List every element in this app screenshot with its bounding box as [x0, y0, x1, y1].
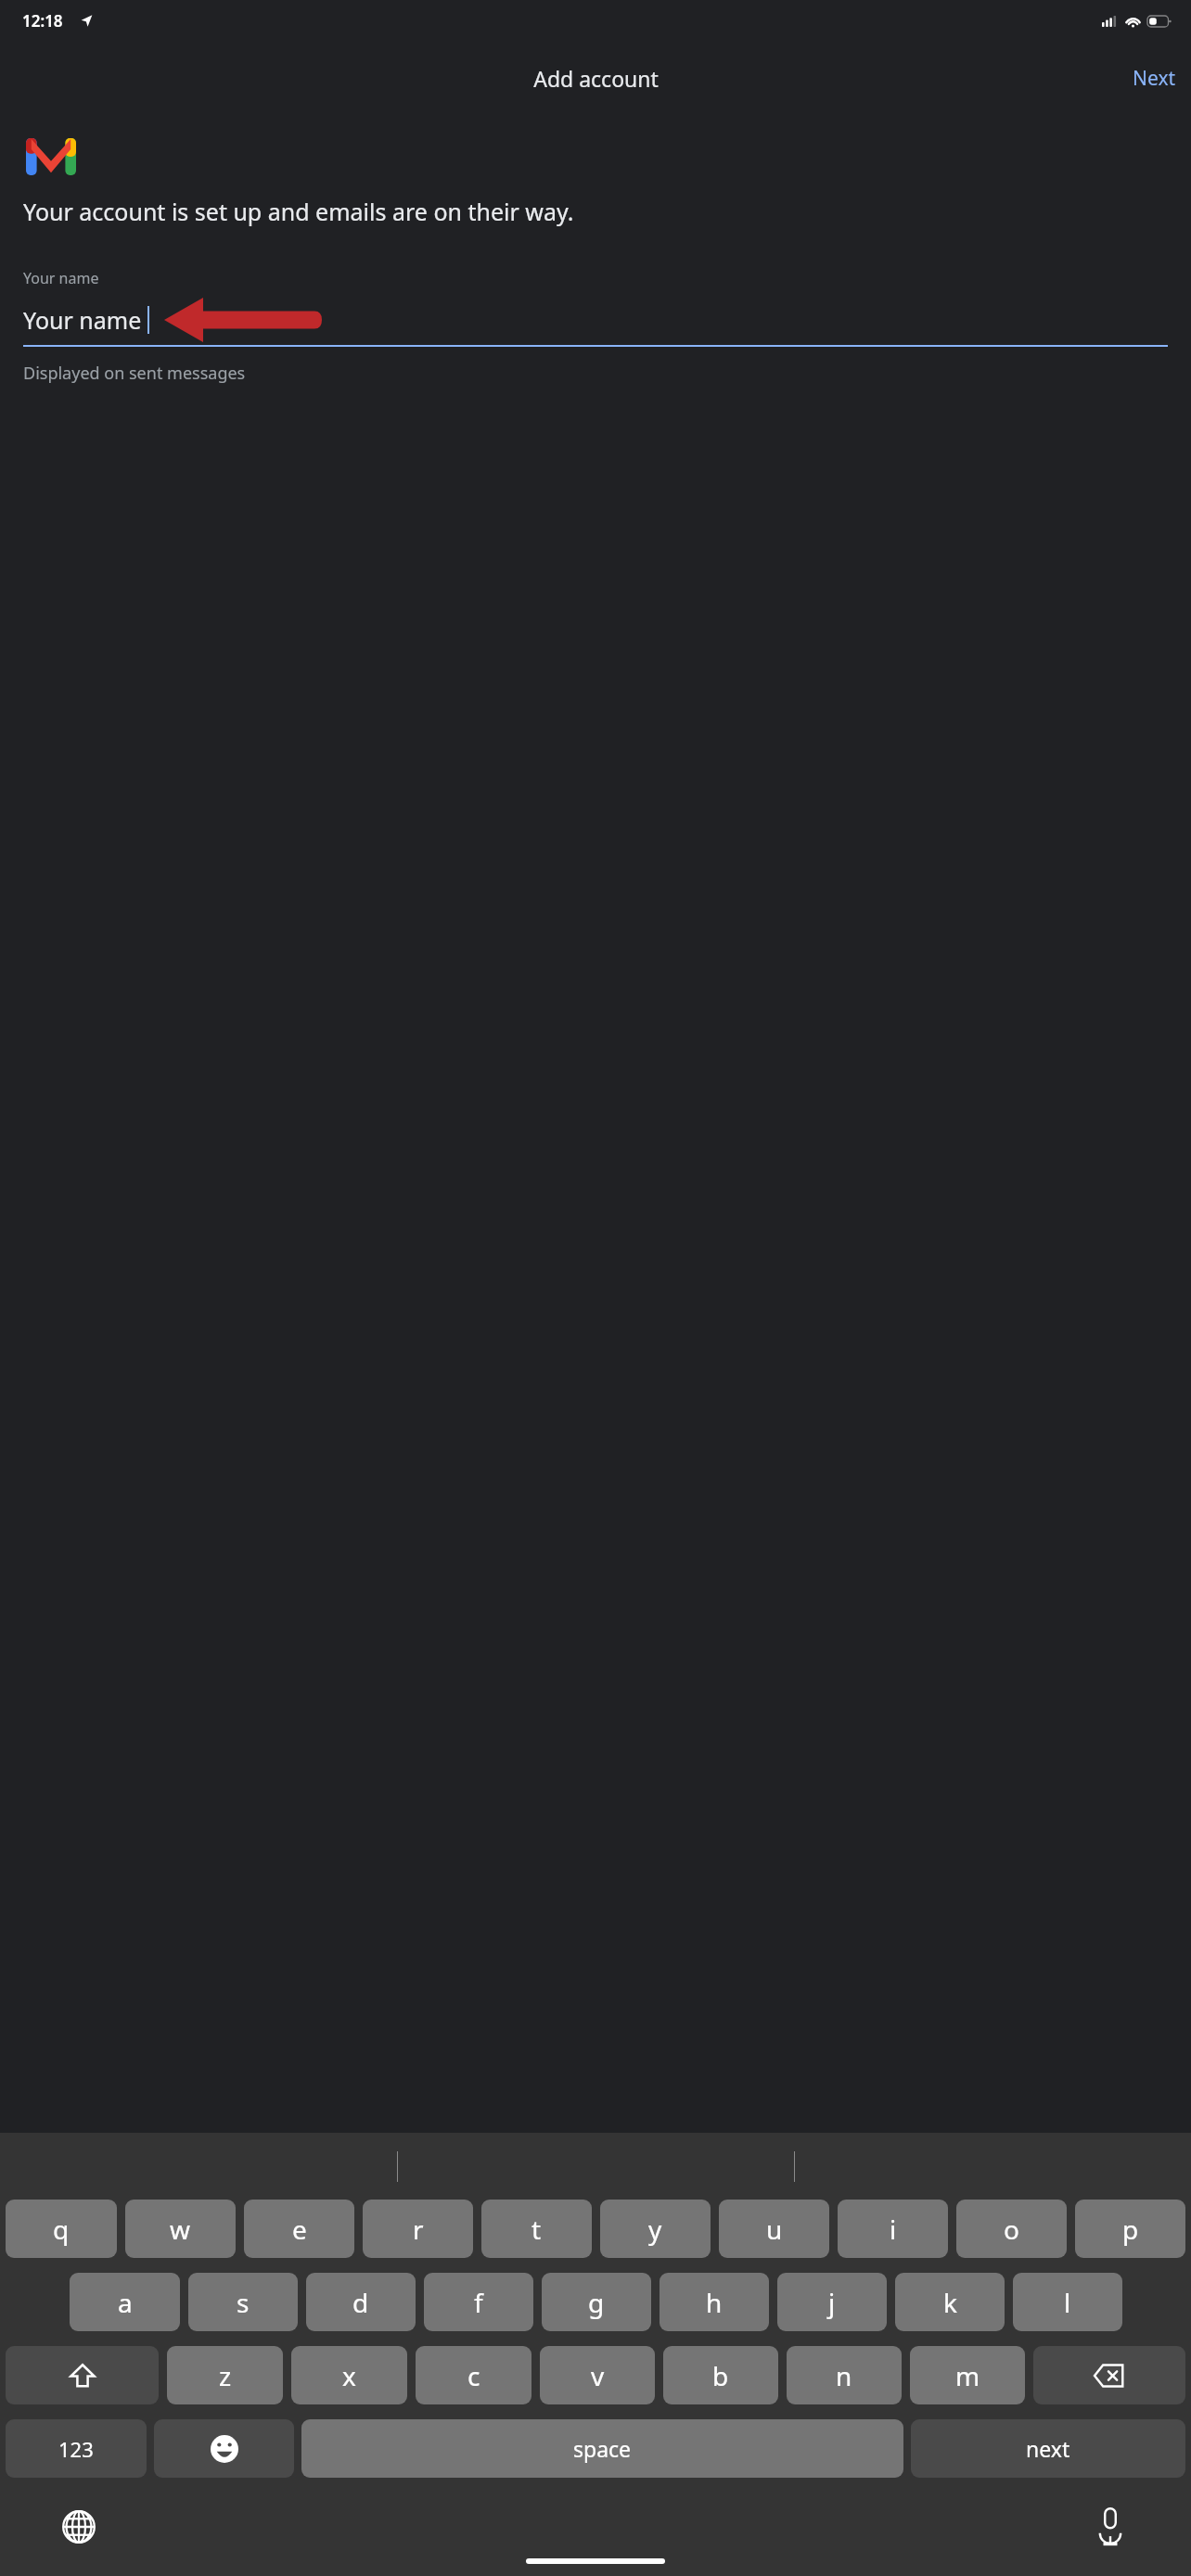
button[interactable]: Voice input	[1087, 2504, 1133, 2550]
staticText: Your account is set up and emails are on…	[23, 196, 574, 227]
button[interactable]: j	[777, 2273, 887, 2331]
staticText: space	[573, 2434, 632, 2463]
staticText: 12:18	[22, 10, 63, 32]
staticText: Your name	[23, 304, 142, 336]
staticText: b	[712, 2358, 729, 2393]
button[interactable]: h	[660, 2273, 769, 2331]
button[interactable]: z	[167, 2346, 283, 2404]
staticText: Displayed on sent messages	[23, 362, 246, 385]
staticText: Next	[1133, 65, 1176, 92]
staticText: d	[352, 2285, 369, 2320]
staticText: Add account	[533, 64, 659, 93]
staticText: Your name	[23, 268, 99, 288]
button[interactable]: d	[306, 2273, 416, 2331]
button[interactable]: x	[291, 2346, 407, 2404]
staticText: r	[413, 2212, 424, 2247]
button[interactable]: e	[244, 2200, 354, 2258]
staticText: x	[342, 2358, 356, 2393]
button[interactable]: q	[6, 2200, 117, 2258]
button[interactable]: s	[188, 2273, 298, 2331]
button[interactable]: Your name	[23, 300, 1168, 340]
button[interactable]: space	[301, 2419, 903, 2478]
button[interactable]: l	[1013, 2273, 1122, 2331]
button[interactable]: Change keyboard language	[56, 2504, 102, 2550]
staticText: k	[943, 2285, 957, 2320]
button[interactable]: g	[542, 2273, 651, 2331]
staticText: e	[292, 2212, 307, 2247]
staticText: l	[1064, 2285, 1071, 2320]
staticText: f	[474, 2285, 483, 2320]
staticText: next	[1026, 2434, 1070, 2463]
button[interactable]: i	[838, 2200, 948, 2258]
button[interactable]: c	[416, 2346, 531, 2404]
staticText: m	[955, 2358, 980, 2393]
button[interactable]: b	[663, 2346, 778, 2404]
button[interactable]: f	[424, 2273, 533, 2331]
button[interactable]: w	[125, 2200, 236, 2258]
staticText: j	[828, 2285, 836, 2320]
staticText: p	[1122, 2212, 1139, 2247]
staticText: 123	[58, 2435, 94, 2463]
button[interactable]: Backspace	[1033, 2346, 1185, 2404]
button[interactable]: k	[895, 2273, 1005, 2331]
staticText: a	[118, 2285, 133, 2320]
staticText: s	[237, 2285, 250, 2320]
button[interactable]: next	[911, 2419, 1185, 2478]
button[interactable]: y	[600, 2200, 711, 2258]
staticText: c	[467, 2358, 480, 2393]
button[interactable]: 123	[6, 2419, 147, 2478]
staticText: y	[648, 2212, 662, 2247]
staticText: h	[706, 2285, 723, 2320]
staticText: u	[766, 2212, 783, 2247]
staticText: v	[591, 2358, 605, 2393]
button[interactable]: t	[481, 2200, 592, 2258]
staticText: w	[170, 2212, 191, 2247]
button[interactable]: Next	[1118, 56, 1191, 101]
button[interactable]: n	[787, 2346, 902, 2404]
staticText: o	[1004, 2212, 1019, 2247]
staticText: i	[890, 2212, 897, 2247]
staticText: t	[531, 2212, 542, 2247]
button[interactable]: Emoji	[154, 2419, 294, 2478]
button[interactable]: u	[719, 2200, 829, 2258]
staticText: n	[836, 2358, 852, 2393]
button[interactable]: o	[956, 2200, 1067, 2258]
button[interactable]: r	[363, 2200, 473, 2258]
button[interactable]: v	[540, 2346, 655, 2404]
button[interactable]: a	[70, 2273, 180, 2331]
staticText: g	[588, 2285, 605, 2320]
button[interactable]: Shift	[6, 2346, 159, 2404]
button[interactable]: p	[1075, 2200, 1185, 2258]
button[interactable]: m	[910, 2346, 1025, 2404]
staticText: q	[53, 2212, 70, 2247]
staticText: z	[219, 2358, 232, 2393]
